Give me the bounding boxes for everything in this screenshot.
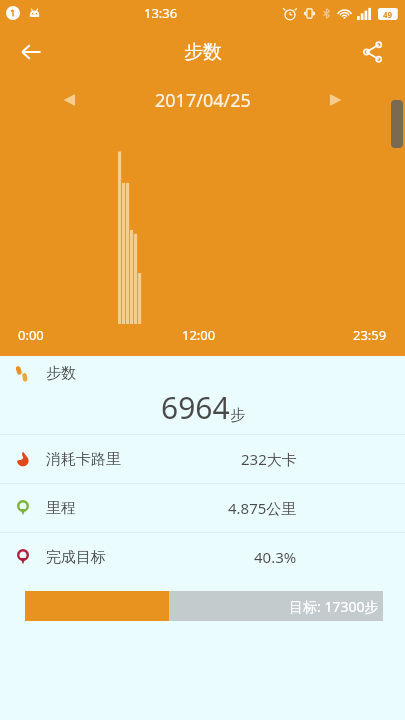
staticText: 40.3% — [254, 547, 297, 567]
button[interactable]: 里程 — [0, 484, 405, 532]
staticText: 消耗卡路里 — [46, 450, 121, 469]
staticText: 13:36 — [144, 4, 178, 22]
staticText: 步数 — [184, 40, 222, 64]
staticText: 完成目标 — [46, 548, 106, 567]
staticText: 目标: 17300步 — [289, 597, 379, 616]
staticText: 2017/04/25 — [155, 88, 251, 113]
staticText: 23:59 — [353, 326, 387, 344]
button[interactable]: Share — [351, 30, 395, 74]
button[interactable]: 消耗卡路里 — [0, 435, 405, 483]
button[interactable]: Next day — [319, 83, 353, 117]
button[interactable]: Back — [8, 29, 54, 75]
staticText: 49 — [383, 9, 393, 20]
staticText: 步 — [230, 406, 245, 425]
staticText: 0:00 — [18, 326, 44, 344]
staticText: 6964 — [161, 387, 230, 428]
button[interactable]: Previous day — [52, 83, 86, 117]
staticText: 4.875公里 — [228, 498, 297, 518]
staticText: 12:00 — [182, 326, 216, 344]
staticText: 步数 — [46, 364, 76, 383]
button[interactable]: 完成目标 — [0, 533, 405, 581]
button[interactable]: 目标: 17300步 — [25, 591, 383, 621]
button[interactable]: 步数 — [0, 356, 405, 434]
staticText: 232大卡 — [241, 449, 297, 469]
staticText: 里程 — [46, 499, 76, 518]
